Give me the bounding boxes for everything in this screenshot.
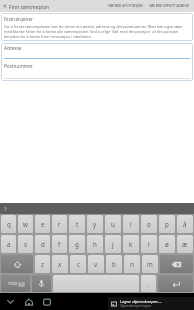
button[interactable]: t	[69, 215, 85, 233]
staticText: a	[7, 240, 11, 248]
staticText: e	[41, 220, 45, 228]
button[interactable]: ø	[159, 235, 175, 253]
button[interactable]: s	[18, 235, 33, 253]
button[interactable]: q	[1, 215, 16, 233]
button[interactable]: y	[87, 215, 103, 233]
button[interactable]: r	[52, 215, 67, 233]
staticText: y	[93, 220, 97, 228]
staticText: For å hente tømmeplanen kan du skrive in…	[4, 24, 191, 39]
staticText: r	[58, 220, 61, 228]
button[interactable]: Back	[3, 293, 17, 310]
staticText: q	[7, 220, 11, 228]
button[interactable]: l	[141, 235, 157, 253]
staticText: j	[112, 240, 114, 248]
button[interactable]: e	[35, 215, 50, 233]
staticText: u	[111, 220, 115, 228]
staticText: Finn tømmeplan	[9, 3, 50, 10]
staticText: Instruksjoner	[4, 16, 33, 22]
staticText: v	[94, 260, 98, 268]
staticText: f	[58, 240, 61, 248]
button[interactable]: Shift	[1, 255, 33, 273]
staticText: n	[130, 260, 134, 268]
staticText: m	[147, 260, 153, 268]
button[interactable]: Space	[53, 275, 139, 292]
staticText: Skjermdumpen lagres	[120, 304, 152, 308]
staticText: k	[129, 240, 133, 248]
staticText: w	[23, 220, 28, 228]
staticText: l	[148, 240, 150, 248]
button[interactable]: .	[141, 275, 156, 292]
staticText: Lagrer skjermdumpen ...	[120, 299, 162, 304]
staticText: SØK MED GPS POSISJON	[108, 4, 143, 8]
button[interactable]: c	[70, 255, 86, 273]
button[interactable]: Enter	[158, 275, 193, 292]
staticText: x	[58, 260, 62, 268]
staticText: å	[183, 220, 187, 228]
button[interactable]: Lagrer skjermdumpen ...	[108, 297, 194, 310]
staticText: t	[76, 220, 79, 228]
button[interactable]: w	[18, 215, 33, 233]
button[interactable]: u	[105, 215, 121, 233]
button[interactable]: Voice input	[32, 275, 51, 292]
button[interactable]: More suggestions	[0, 203, 10, 214]
staticText: b	[112, 260, 116, 268]
button[interactable]: Adresse	[4, 45, 190, 59]
button[interactable]: f	[52, 235, 67, 253]
button[interactable]: SØK MED OPPGITT ADRESSE	[146, 0, 194, 12]
staticText: Postnummer	[4, 63, 33, 69]
staticText: s	[24, 240, 27, 248]
staticText: p	[165, 220, 169, 228]
button[interactable]: p	[159, 215, 175, 233]
staticText: ?123	[8, 281, 18, 287]
button[interactable]: g	[69, 235, 85, 253]
button[interactable]: o	[141, 215, 157, 233]
button[interactable]: b	[106, 255, 122, 273]
button[interactable]: i	[123, 215, 139, 233]
button[interactable]: k	[123, 235, 139, 253]
button[interactable]: a	[1, 235, 16, 253]
button[interactable]: m	[142, 255, 158, 273]
staticText: d	[41, 240, 45, 248]
staticText: i	[130, 220, 132, 228]
button[interactable]: Recent apps	[40, 293, 54, 310]
button[interactable]: Back	[0, 0, 9, 12]
staticText: o	[147, 220, 151, 228]
button[interactable]: z	[35, 255, 50, 273]
button[interactable]: SØK MED GPS POSISJON	[105, 0, 146, 12]
button[interactable]: Postnummer	[4, 63, 190, 79]
staticText: z	[41, 260, 44, 268]
button[interactable]: æ	[177, 235, 193, 253]
button[interactable]: Backspace	[160, 255, 193, 273]
button[interactable]: Symbols	[1, 275, 30, 292]
staticText: ø	[165, 240, 169, 248]
staticText: æ	[182, 240, 188, 248]
staticText: h	[93, 240, 97, 248]
button[interactable]: d	[35, 235, 50, 253]
button[interactable]: n	[124, 255, 140, 273]
button[interactable]: x	[52, 255, 68, 273]
staticText: SØK MED OPPGITT ADRESSE	[149, 4, 190, 8]
staticText: g	[75, 240, 79, 248]
button[interactable]: v	[88, 255, 104, 273]
button[interactable]: j	[105, 235, 121, 253]
staticText: Adresse	[4, 45, 22, 51]
staticText: .	[148, 280, 150, 288]
button[interactable]: Home	[22, 293, 36, 310]
staticText: c	[77, 260, 80, 268]
button[interactable]: å	[177, 215, 193, 233]
button[interactable]: h	[87, 235, 103, 253]
